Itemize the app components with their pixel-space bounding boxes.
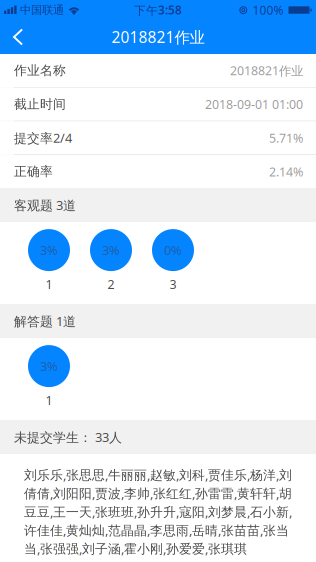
staticText: 客观题 3道 xyxy=(14,196,76,214)
staticText: 提交率2/4 xyxy=(14,129,72,147)
staticText: 正确率 xyxy=(14,163,53,180)
staticText: 2.14% xyxy=(269,163,303,180)
staticText: 刘乐乐,张思思,牛丽丽,赵敏,刘科,贾佳乐,杨洋,刘倩倩,刘阳阳,贾波,李帅,张… xyxy=(24,466,292,557)
staticText: 解答题 1道 xyxy=(14,312,76,330)
staticText: 1 xyxy=(45,276,52,293)
staticText: 未提交学生： 33人 xyxy=(14,428,122,446)
staticText: 2 xyxy=(107,276,114,293)
staticText: 3% xyxy=(40,357,58,375)
staticText: 中国联通 xyxy=(20,3,64,17)
staticText: 作业名称 xyxy=(14,62,66,78)
staticText: 下午3:58 xyxy=(134,2,182,18)
staticText: 100% xyxy=(252,2,283,18)
staticText: 3 xyxy=(169,276,176,293)
staticText: 2018821作业 xyxy=(111,26,204,48)
staticText: 截止时间 xyxy=(14,96,66,112)
staticText: 5.71% xyxy=(269,129,303,146)
staticText: 2018-09-01 01:00 xyxy=(205,96,303,113)
staticText: 2018821作业 xyxy=(230,62,303,79)
button[interactable]: 返回 xyxy=(0,20,39,54)
staticText: 1 xyxy=(45,392,52,409)
staticText: 3% xyxy=(40,241,58,259)
staticText: 3% xyxy=(102,241,120,259)
staticText: 0% xyxy=(164,241,182,259)
